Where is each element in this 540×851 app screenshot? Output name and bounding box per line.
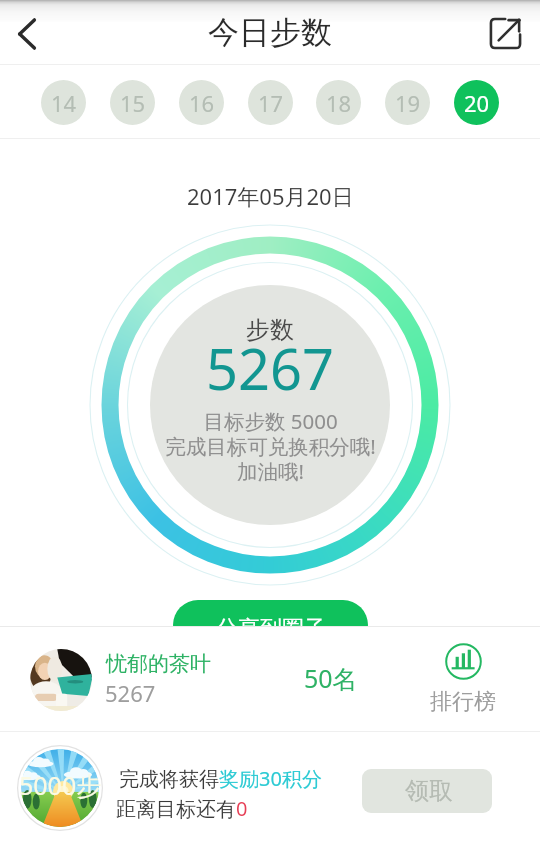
button[interactable]: 领取 <box>362 769 492 813</box>
staticText: 目标步数 5000 完成目标可兑换积分哦! 加油哦! <box>165 407 376 485</box>
button[interactable]: 20 <box>454 80 499 125</box>
staticText: 2017年05月20日 <box>187 181 354 211</box>
staticText: 5267 <box>206 330 335 406</box>
button[interactable]: 19 <box>385 80 430 125</box>
staticText: 20 <box>464 88 490 118</box>
staticText: 领取 <box>405 776 453 806</box>
staticText: 5267 <box>105 678 156 708</box>
staticText: 17 <box>258 88 284 118</box>
staticText: 排行榜 <box>430 688 496 716</box>
staticText: 完成将获得奖励30积分 <box>119 765 322 792</box>
staticText: 50名 <box>304 661 358 695</box>
staticText: 19 <box>395 88 421 118</box>
button[interactable]: 分享到圈子 <box>173 600 368 650</box>
button[interactable]: 忧郁的茶叶 <box>0 627 540 731</box>
button[interactable]: 16 <box>179 80 224 125</box>
staticText: 今日步数 <box>208 13 332 52</box>
staticText: 18 <box>326 88 352 118</box>
button[interactable]: Share <box>482 6 540 65</box>
button[interactable]: 18 <box>316 80 361 125</box>
staticText: 步数 <box>246 315 294 345</box>
staticText: 5000步 <box>19 768 102 802</box>
button[interactable]: 17 <box>248 80 293 125</box>
button[interactable]: 15 <box>110 80 155 125</box>
staticText: 分享到圈子 <box>216 615 326 643</box>
staticText: 忧郁的茶叶 <box>106 651 211 677</box>
button[interactable]: Back <box>0 6 58 65</box>
staticText: 16 <box>189 88 215 118</box>
button[interactable]: 14 <box>41 80 86 125</box>
staticText: 14 <box>51 88 77 118</box>
staticText: 距离目标还有0 <box>116 795 248 822</box>
staticText: 15 <box>120 88 146 118</box>
button[interactable]: 排行榜 <box>424 643 502 716</box>
